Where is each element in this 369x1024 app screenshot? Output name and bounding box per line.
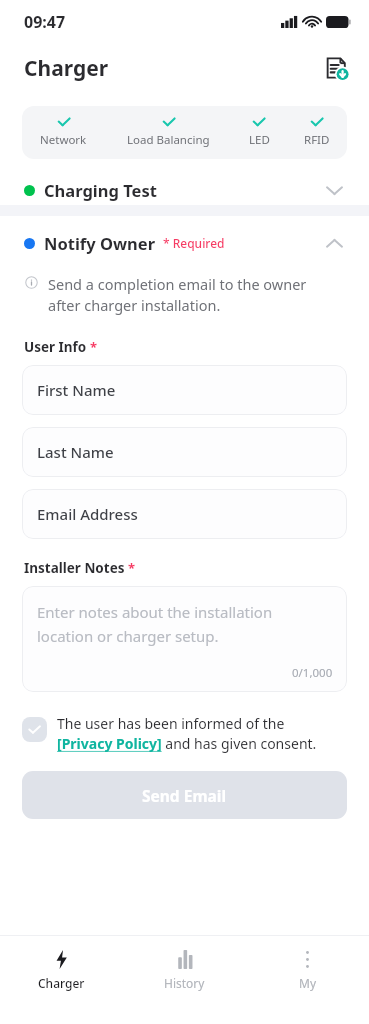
button[interactable]: Last Name xyxy=(22,427,347,477)
staticText: The user has been informed of the [Priva… xyxy=(57,714,317,754)
button[interactable]: Network xyxy=(22,117,105,148)
staticText: Send Email xyxy=(142,785,227,806)
staticText: Last Name xyxy=(37,442,114,462)
staticText: Load Balancing xyxy=(127,132,210,148)
button[interactable]: Charging Test xyxy=(0,175,369,205)
staticText: History xyxy=(164,975,205,991)
staticText: 09:47 xyxy=(24,11,66,33)
staticText: Enter notes about the installation locat… xyxy=(37,602,273,646)
button[interactable]: Enter notes about the installation locat… xyxy=(22,586,347,692)
button[interactable]: First Name xyxy=(22,365,347,415)
staticText: Notify Owner xyxy=(44,232,156,254)
staticText: Installer Notes xyxy=(24,559,125,577)
staticText: * Required xyxy=(163,235,225,251)
staticText: * xyxy=(90,338,98,356)
staticText: Charger xyxy=(24,54,109,83)
staticText: 0/1,000 xyxy=(292,665,333,681)
staticText: Email Address xyxy=(37,504,138,524)
button[interactable]: RFID xyxy=(286,117,347,148)
button[interactable]: Send Email xyxy=(22,771,347,819)
staticText: Charging Test xyxy=(44,179,157,201)
staticText: LED xyxy=(249,132,270,148)
button[interactable]: Email Address xyxy=(22,489,347,539)
button[interactable]: Notify Owner xyxy=(0,228,369,258)
button[interactable]: The user has been informed of the [Priva… xyxy=(22,714,349,754)
button[interactable]: History xyxy=(123,936,246,991)
button[interactable]: My xyxy=(246,936,369,991)
staticText: Charger xyxy=(38,975,85,991)
button[interactable]: Charger xyxy=(0,936,123,991)
staticText: Send a completion email to the owner aft… xyxy=(48,274,307,316)
staticText: My xyxy=(299,975,317,991)
button[interactable]: LED xyxy=(232,117,286,148)
staticText: * xyxy=(128,559,136,577)
staticText: User Info xyxy=(24,338,87,356)
staticText: RFID xyxy=(304,132,330,148)
staticText: First Name xyxy=(37,380,116,400)
button[interactable]: Export report xyxy=(319,51,353,85)
staticText: Network xyxy=(40,132,87,148)
button[interactable]: Load Balancing xyxy=(105,117,232,148)
